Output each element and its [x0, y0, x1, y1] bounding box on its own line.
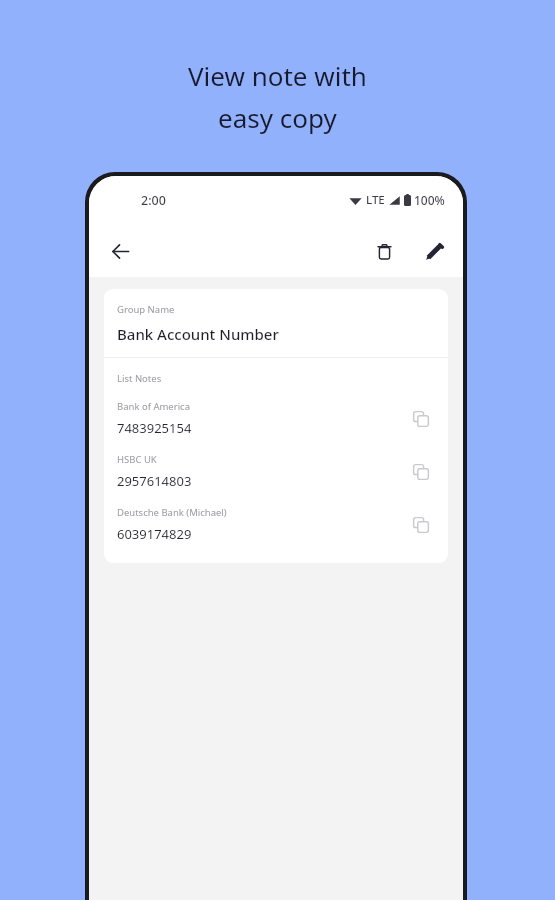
staticText: Group Name — [117, 303, 175, 316]
button[interactable]: HSBC UK — [104, 453, 448, 490]
staticText: 2957614803 — [117, 472, 192, 490]
staticText: 2:00 — [141, 192, 166, 209]
button[interactable]: Deutsche Bank (Michael) — [104, 506, 448, 543]
button[interactable]: Bank of America — [104, 400, 448, 437]
button[interactable]: Copy Bank of America — [405, 403, 437, 435]
staticText: LTE — [366, 192, 385, 208]
staticText: Deutsche Bank (Michael) — [117, 506, 227, 519]
staticText: 7483925154 — [117, 419, 192, 437]
button[interactable]: Back — [101, 232, 139, 270]
staticText: List Notes — [117, 372, 162, 385]
staticText: 100% — [414, 192, 445, 208]
staticText: Bank Account Number — [117, 324, 279, 344]
button[interactable]: Copy Deutsche Bank (Michael) — [405, 509, 437, 541]
staticText: Bank of America — [117, 400, 190, 413]
staticText: HSBC UK — [117, 453, 157, 466]
staticText: easy copy — [218, 100, 337, 135]
staticText: 6039174829 — [117, 525, 192, 543]
button[interactable]: Edit — [417, 234, 451, 268]
button[interactable]: Copy HSBC UK — [405, 456, 437, 488]
button[interactable]: Delete — [367, 234, 401, 268]
staticText: View note with — [188, 58, 367, 93]
